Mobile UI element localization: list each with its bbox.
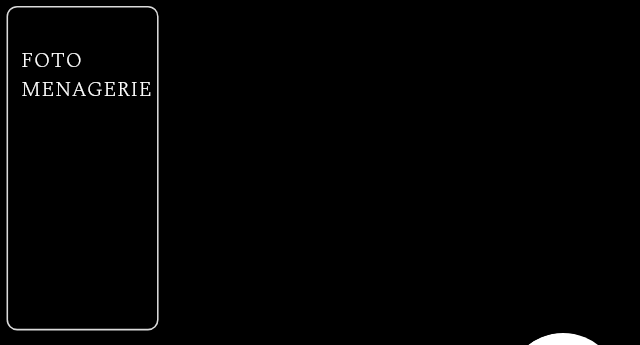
button[interactable]: Add photo [506, 333, 620, 345]
staticText: FOTO MENAGERIE [21, 45, 174, 106]
button[interactable]: FOTO MENAGERIE [6, 5, 159, 332]
